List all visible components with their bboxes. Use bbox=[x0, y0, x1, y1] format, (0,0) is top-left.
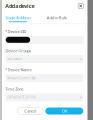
staticText: OK bbox=[62, 108, 67, 114]
staticText: Cancel bbox=[24, 108, 36, 114]
button[interactable]: OK bbox=[45, 107, 83, 114]
button[interactable]: Cancel bbox=[17, 107, 43, 114]
staticText: Add a device bbox=[5, 2, 34, 10]
button[interactable]: Test Devices bbox=[5, 55, 83, 63]
staticText: Device Groups bbox=[5, 48, 31, 53]
staticText: ▾ bbox=[80, 57, 81, 60]
staticText: Add in Bulk bbox=[47, 15, 67, 20]
button[interactable]: Network Current Task bbox=[5, 74, 83, 82]
staticText: Time Zone bbox=[5, 86, 23, 92]
button[interactable] bbox=[5, 36, 83, 44]
staticText: Network Current Task bbox=[7, 76, 35, 80]
button[interactable]: Close bbox=[78, 3, 83, 9]
staticText: * bbox=[5, 29, 7, 34]
staticText: Device Name bbox=[8, 67, 32, 72]
staticText: Device EID bbox=[8, 29, 27, 34]
button[interactable]: Single Addition bbox=[5, 15, 30, 22]
staticText: Test Devices bbox=[7, 57, 22, 61]
staticText: ▾ bbox=[80, 96, 81, 99]
staticText: US/Pacific(UTC-07:00) bbox=[7, 96, 36, 99]
button[interactable]: Add in Bulk bbox=[47, 15, 67, 22]
staticText: * bbox=[5, 67, 7, 72]
staticText: Single Addition bbox=[5, 15, 30, 20]
button[interactable]: US/Pacific(UTC-07:00) bbox=[5, 93, 83, 101]
